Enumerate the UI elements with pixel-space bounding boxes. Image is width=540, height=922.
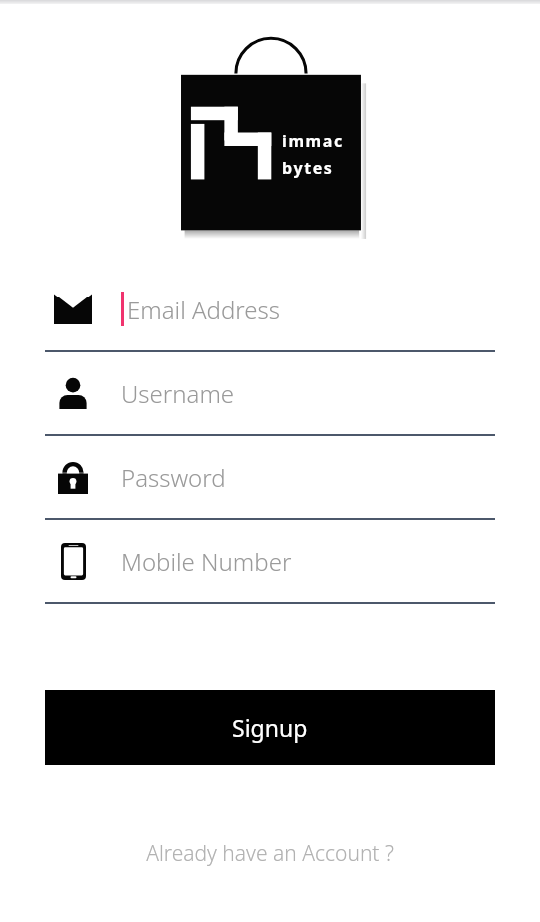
staticText: immac [282,130,344,152]
staticText: Mobile Number [121,545,292,578]
button[interactable]: Mobile Number [45,520,495,604]
button[interactable]: Password [45,436,495,520]
button[interactable]: Already have an Account ? [0,831,540,875]
staticText: Already have an Account ? [146,839,394,868]
button[interactable]: Signup [45,690,495,765]
button[interactable]: Email Address [45,268,495,352]
staticText: Username [121,377,235,410]
staticText: Signup [232,712,308,743]
staticText: Email Address [127,293,280,326]
staticText: Password [121,461,226,494]
staticText: bytes [282,157,334,179]
button[interactable]: Username [45,352,495,436]
